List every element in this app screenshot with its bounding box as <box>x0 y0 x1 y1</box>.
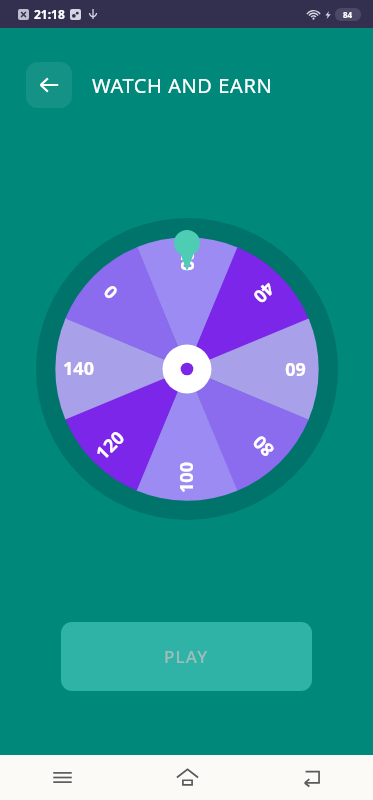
staticText: WATCH AND EARN <box>92 72 273 99</box>
staticText: 60 <box>285 357 306 382</box>
staticText: 100 <box>174 462 199 493</box>
button[interactable]: Back <box>26 62 72 108</box>
staticText: 20 <box>175 250 200 271</box>
staticText: PLAY <box>164 645 209 668</box>
button[interactable]: PLAY <box>61 622 312 691</box>
staticText: 84 <box>343 9 353 20</box>
button[interactable]: Home <box>125 755 249 800</box>
staticText: 80 <box>247 430 280 462</box>
staticText: 21:18 <box>34 6 65 22</box>
staticText: 140 <box>63 356 94 381</box>
staticText: 0 <box>98 279 123 305</box>
button[interactable]: Back <box>249 755 373 800</box>
button[interactable]: Recent apps <box>0 755 125 800</box>
staticText: 120 <box>90 426 130 465</box>
staticText: 40 <box>248 276 280 309</box>
